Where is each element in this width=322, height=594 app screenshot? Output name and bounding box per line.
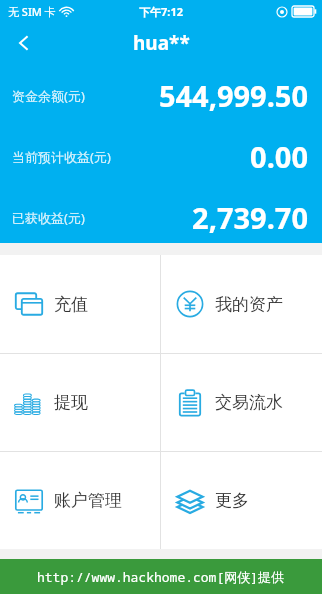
button[interactable]: 充值 [0, 255, 160, 353]
button[interactable]: 我的资产 [161, 255, 322, 353]
staticText: 2,739.70 [192, 198, 308, 237]
staticText: 更多 [215, 490, 249, 511]
staticText: 无 SIM 卡 [8, 4, 56, 19]
staticText: 账户管理 [54, 490, 122, 511]
staticText: http://www.hackhome.com[网侠]提供 [37, 568, 285, 586]
button[interactable]: 交易流水 [161, 354, 322, 451]
button[interactable]: Back [0, 22, 48, 64]
staticText: 544,999.50 [158, 76, 308, 115]
staticText: 提现 [54, 392, 88, 413]
staticText: 交易流水 [215, 392, 283, 413]
staticText: 下午7:12 [139, 4, 183, 19]
staticText: 充值 [54, 294, 88, 315]
button[interactable]: 更多 [161, 452, 322, 549]
staticText: 当前预计收益(元) [12, 148, 111, 166]
button[interactable]: 提现 [0, 354, 160, 451]
staticText: 资金余额(元) [12, 87, 85, 105]
staticText: hua** [133, 30, 190, 56]
staticText: 已获收益(元) [12, 209, 85, 227]
button[interactable]: 账户管理 [0, 452, 160, 549]
staticText: 0.00 [250, 137, 308, 176]
staticText: 我的资产 [215, 294, 283, 315]
